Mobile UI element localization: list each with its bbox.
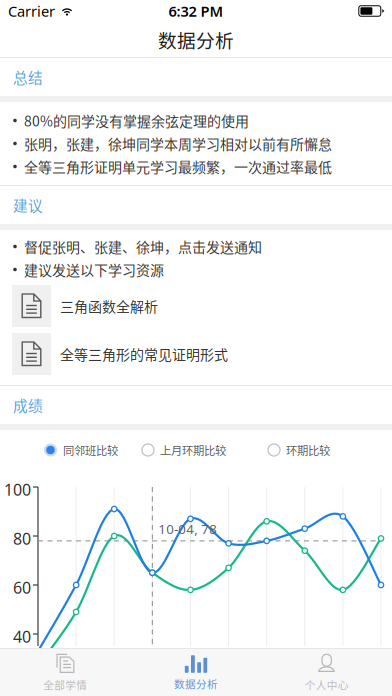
staticText: 督促张明、张建、徐坤，点击发送通知 xyxy=(24,236,262,257)
staticText: 个人中心 xyxy=(305,677,349,692)
staticText: 100 xyxy=(4,479,31,500)
button[interactable]: 数据分析 xyxy=(131,649,261,696)
staticText: 总结 xyxy=(13,66,43,88)
button[interactable]: 个人中心 xyxy=(261,649,392,696)
staticText: 三角函数全解析 xyxy=(60,296,158,316)
button[interactable]: 三角函数全解析 xyxy=(0,285,392,327)
staticText: 数据分析 xyxy=(158,26,234,53)
staticText: 全等三角形的常见证明形式 xyxy=(60,344,228,364)
staticText: 建议发送以下学习资源 xyxy=(24,259,164,280)
staticText: 10-04, 78 xyxy=(158,520,217,538)
staticText: 80 xyxy=(13,528,31,549)
button[interactable]: 同邻班比较 xyxy=(44,437,118,463)
staticText: Carrier xyxy=(8,1,55,21)
staticText: 建议 xyxy=(13,194,43,216)
staticText: 6:32 PM xyxy=(168,1,223,21)
button[interactable]: 上月环期比较 xyxy=(142,437,226,463)
staticText: 上月环期比较 xyxy=(160,442,226,458)
staticText: 80%的同学没有掌握余弦定理的使用 xyxy=(24,110,249,131)
button[interactable]: 全等三角形的常见证明形式 xyxy=(0,333,392,375)
staticText: 环期比较 xyxy=(286,442,330,458)
staticText: 40 xyxy=(13,626,31,647)
staticText: 张明，张建，徐坤同学本周学习相对以前有所懈怠 xyxy=(24,133,332,154)
staticText: 同邻班比较 xyxy=(63,442,118,458)
staticText: 全部学情 xyxy=(43,677,87,692)
button[interactable]: 环期比较 xyxy=(268,437,330,463)
button[interactable]: 全部学情 xyxy=(0,649,131,696)
staticText: 成绩 xyxy=(13,394,43,416)
staticText: 数据分析 xyxy=(174,676,218,691)
staticText: 全等三角形证明单元学习最频繁，一次通过率最低 xyxy=(24,156,332,177)
staticText: 60 xyxy=(13,577,31,598)
